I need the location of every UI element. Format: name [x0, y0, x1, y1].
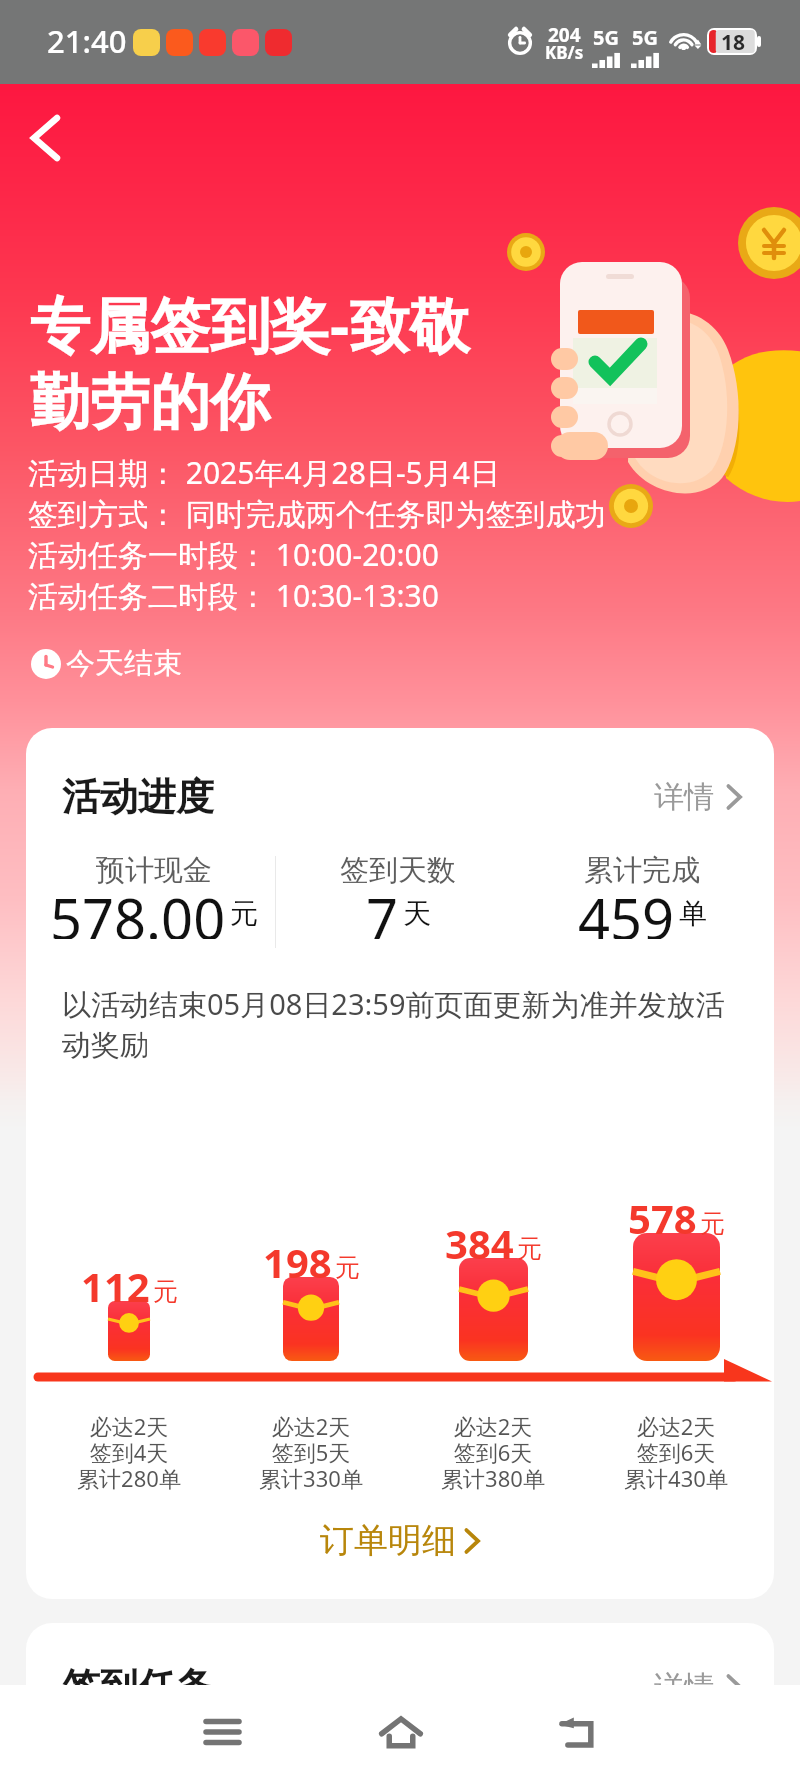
staticText: 5G: [632, 24, 658, 51]
button[interactable]: 详情: [654, 1668, 742, 1706]
staticText: 预计现金: [96, 852, 212, 889]
staticText: 专属签到奖-致敬: [30, 283, 470, 365]
staticText: 578: [628, 1191, 697, 1245]
staticText: 459: [578, 880, 675, 939]
staticText: 订单明细: [320, 1519, 456, 1562]
staticText: 384: [445, 1216, 514, 1270]
staticText: 18: [721, 28, 746, 55]
staticText: 以活动结束05月08日23:59前页面更新为准并发放活动奖励: [62, 984, 744, 1063]
button[interactable]: 详情: [654, 778, 742, 816]
button[interactable]: 订单明细: [26, 1519, 774, 1562]
staticText: 必达2天 签到6天 累计430单: [596, 1411, 756, 1493]
staticText: 204: [548, 22, 581, 48]
staticText: 活动日期： 2025年4月28日-5月4日: [28, 452, 500, 493]
staticText: 元: [230, 896, 258, 931]
staticText: 今天结束: [66, 645, 182, 682]
staticText: 活动任务二时段： 10:30-13:30: [28, 575, 439, 616]
staticText: 5G: [593, 24, 619, 51]
staticText: 112: [81, 1259, 150, 1313]
button[interactable]: Back: [533, 1702, 622, 1762]
staticText: 元: [700, 1208, 725, 1239]
button[interactable]: Home: [356, 1702, 445, 1762]
staticText: 元: [517, 1233, 542, 1264]
staticText: 必达2天 签到5天 累计330单: [231, 1411, 391, 1493]
staticText: 详情: [654, 778, 714, 816]
button[interactable]: Back: [13, 106, 77, 170]
staticText: 单: [679, 896, 707, 931]
staticText: KB/s: [545, 41, 584, 64]
staticText: 签到天数: [340, 852, 456, 889]
staticText: 天: [403, 896, 431, 931]
staticText: 198: [263, 1235, 332, 1289]
staticText: 7: [366, 880, 399, 939]
staticText: 勤劳的你: [30, 365, 270, 441]
staticText: 必达2天 签到6天 累计380单: [413, 1411, 573, 1493]
staticText: 21:40: [47, 20, 127, 62]
staticText: 必达2天 签到4天 累计280单: [49, 1411, 209, 1493]
staticText: 活动进度: [62, 773, 214, 821]
staticText: 元: [335, 1252, 360, 1283]
staticText: 累计完成: [584, 852, 700, 889]
staticText: 活动任务一时段： 10:00-20:00: [28, 534, 439, 575]
staticText: 元: [153, 1276, 178, 1307]
button[interactable]: Recent apps: [178, 1702, 267, 1762]
staticText: 578.00: [50, 880, 226, 939]
staticText: 签到方式： 同时完成两个任务即为签到成功: [28, 493, 606, 534]
staticText: 详情: [654, 1668, 714, 1706]
staticText: 签到任务: [62, 1663, 214, 1711]
